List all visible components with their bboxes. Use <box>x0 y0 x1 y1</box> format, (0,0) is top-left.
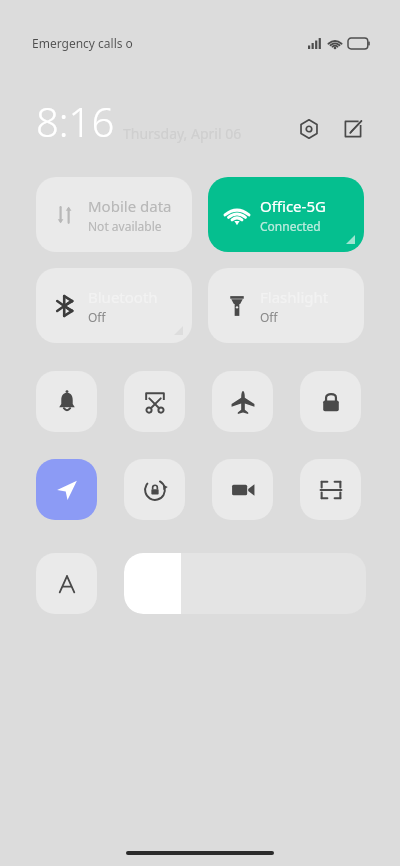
button[interactable]: Screen record <box>212 459 273 520</box>
button[interactable]: Screenshot <box>124 371 185 432</box>
button[interactable]: Silent <box>36 371 97 432</box>
staticText: Off <box>88 309 106 325</box>
button[interactable]: Location <box>36 459 97 520</box>
button[interactable]: Bluetooth <box>36 268 192 343</box>
button[interactable]: Edit <box>338 114 368 144</box>
staticText: 8:16 <box>36 94 115 148</box>
button[interactable]: Airplane mode <box>212 371 273 432</box>
staticText: Connected <box>260 218 321 234</box>
button[interactable]: Settings <box>294 114 324 144</box>
button[interactable]: Office-5G <box>208 177 364 252</box>
staticText: Mobile data <box>88 196 172 216</box>
staticText: Not available <box>88 218 162 234</box>
staticText: Thursday, April 06 <box>123 124 242 143</box>
staticText: Off <box>260 309 278 325</box>
button[interactable]: Lock <box>300 371 361 432</box>
button[interactable]: Auto rotate <box>124 459 185 520</box>
staticText: Emergency calls o <box>32 35 133 51</box>
staticText: Office-5G <box>260 196 326 216</box>
button[interactable]: Mobile data <box>36 177 192 252</box>
button[interactable]: Brightness <box>124 553 366 614</box>
button[interactable]: Scan <box>300 459 361 520</box>
button[interactable]: Auto brightness <box>36 553 97 614</box>
button[interactable]: Flashlight <box>208 268 364 343</box>
